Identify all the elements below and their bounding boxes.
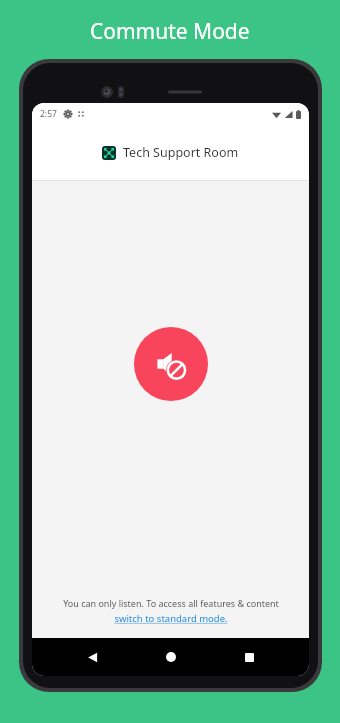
button[interactable]: Recent apps bbox=[230, 638, 268, 676]
staticText: Commute Mode bbox=[90, 17, 250, 46]
button[interactable]: Muted, listen only bbox=[134, 327, 208, 401]
button[interactable]: Home bbox=[152, 638, 190, 676]
button[interactable]: switch to standard mode. bbox=[110, 611, 232, 626]
button[interactable]: Back bbox=[73, 638, 111, 676]
staticText: switch to standard mode. bbox=[114, 612, 228, 625]
staticText: Tech Support Room bbox=[123, 144, 239, 161]
staticText: 2:57 bbox=[40, 108, 57, 120]
staticText: You can only listen. To access all featu… bbox=[63, 597, 279, 609]
